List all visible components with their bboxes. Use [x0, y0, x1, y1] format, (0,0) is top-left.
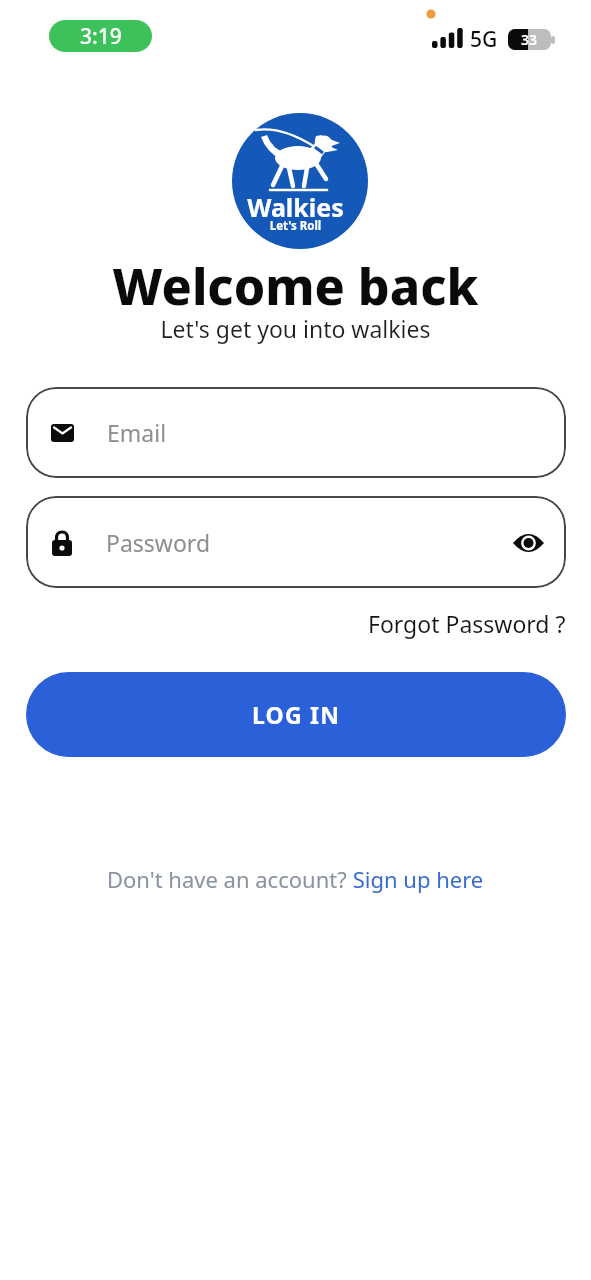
staticText: Password: [106, 527, 211, 558]
staticText: Let's Roll: [0, 218, 591, 234]
button[interactable]: Password: [26, 496, 566, 588]
button[interactable]: Forgot Password ?: [0, 608, 591, 639]
button[interactable]: Email: [26, 387, 566, 478]
staticText: Welcome back: [0, 252, 591, 320]
staticText: Email: [107, 417, 167, 448]
staticText: Sign up here: [347, 864, 484, 894]
staticText: 33: [521, 30, 538, 49]
staticText: Walkies: [0, 190, 591, 224]
staticText: 5G: [470, 25, 498, 54]
button[interactable]: LOG IN: [26, 672, 566, 757]
staticText: LOG IN: [252, 699, 341, 730]
staticText: Let's get you into walkies: [0, 313, 591, 344]
staticText: 3:19: [80, 22, 122, 51]
staticText: Don't have an account?: [107, 864, 347, 894]
staticText: Forgot Password ?: [368, 608, 566, 639]
button[interactable]: Sign up here: [347, 864, 484, 894]
